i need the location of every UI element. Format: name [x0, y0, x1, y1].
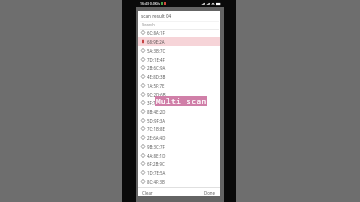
staticText: 16:43 0.0K/s — [140, 1, 160, 6]
staticText: Multi scan — [156, 96, 207, 106]
staticText: 9C:2D:6B — [147, 92, 166, 98]
button[interactable]: Done — [204, 190, 216, 196]
button[interactable]: Search — [140, 21, 219, 30]
button[interactable]: 7D:1E:4F — [138, 55, 220, 64]
button[interactable]: 8C:4F:3B — [138, 177, 220, 186]
staticText: scan result 04 — [141, 13, 172, 19]
staticText: 4E:8D:3B — [147, 74, 166, 80]
button[interactable]: 68:9E:2A — [138, 37, 220, 46]
staticText: 7D:1E:4F — [147, 57, 165, 63]
staticText: 2B:6C:9A — [147, 65, 166, 71]
button[interactable]: 4E:8D:3B — [138, 72, 220, 81]
button[interactable]: 2B:6C:9A — [138, 63, 220, 72]
button[interactable]: 1A:5F:7E — [138, 81, 220, 90]
button[interactable]: 9C:2D:6B — [138, 90, 220, 99]
staticText: 8B:4E:2D — [147, 109, 166, 115]
button[interactable]: Clear — [142, 190, 153, 196]
staticText: 5D:9F:3A — [147, 118, 166, 124]
staticText: Search — [142, 22, 155, 27]
button[interactable]: 2E:6A:4D — [138, 133, 220, 142]
staticText: 3F:7A:1C — [147, 100, 165, 106]
button[interactable]: 1D:7E:5A — [138, 168, 220, 177]
button[interactable]: 3F:7A:1C — [138, 98, 220, 107]
staticText: 6C:8A:1F — [147, 30, 165, 36]
staticText: 68:9E:2A — [147, 39, 165, 45]
staticText: 1A:5F:7E — [147, 83, 165, 89]
staticText: 9B:3C:7F — [147, 144, 165, 150]
button[interactable]: 9B:3C:7F — [138, 142, 220, 151]
staticText: 2E:6A:4D — [147, 135, 166, 141]
button[interactable]: 7C:1B:8E — [138, 124, 220, 133]
staticText: 1D:7E:5A — [147, 170, 166, 176]
button[interactable]: 6F:2B:9C — [138, 159, 220, 168]
button[interactable]: 8B:4E:2D — [138, 107, 220, 116]
button[interactable]: 5A:3B:7C — [138, 46, 220, 55]
staticText: 8C:4F:3B — [147, 179, 165, 185]
staticText: 6F:2B:9C — [147, 161, 165, 167]
button[interactable]: 4A:8E:1D — [138, 151, 220, 160]
button[interactable]: 6C:8A:1F — [138, 28, 220, 37]
staticText: 5A:3B:7C — [147, 48, 166, 54]
button[interactable]: 5D:9F:3A — [138, 116, 220, 125]
staticText: 4A:8E:1D — [147, 153, 166, 159]
staticText: 7C:1B:8E — [147, 126, 165, 132]
